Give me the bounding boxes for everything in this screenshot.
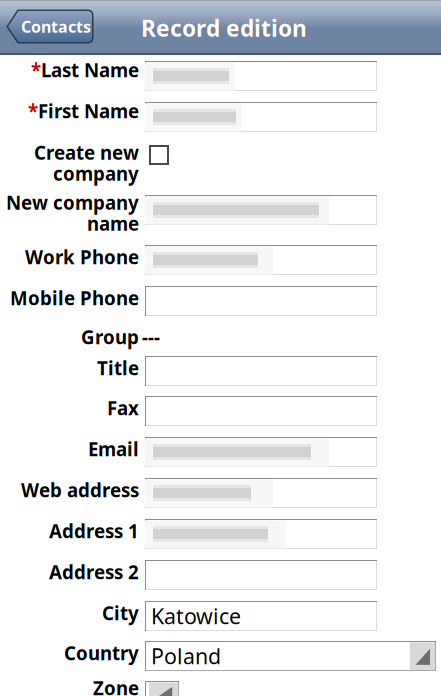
staticText: Web address	[21, 478, 139, 502]
staticText: First Name	[38, 99, 139, 123]
staticText: *	[28, 99, 38, 123]
staticText: Zone	[93, 676, 139, 696]
staticText: name	[87, 211, 139, 236]
button[interactable]: Create new company	[150, 146, 168, 164]
staticText: Address 2	[49, 560, 139, 584]
staticText: Katowice	[151, 602, 241, 630]
staticText: Last Name	[41, 58, 139, 82]
button[interactable]: Poland	[145, 641, 436, 671]
staticText: New company	[6, 190, 139, 215]
staticText: Group	[81, 325, 139, 349]
staticText: *	[31, 58, 41, 82]
staticText: Email	[88, 437, 139, 461]
button[interactable]: Select	[145, 681, 179, 696]
staticText: Work Phone	[25, 245, 139, 269]
staticText: company	[53, 161, 139, 186]
staticText: Create new	[34, 140, 139, 165]
button[interactable]: Contacts	[6, 9, 94, 44]
staticText: Record edition	[141, 13, 307, 43]
staticText: Address 1	[49, 519, 139, 543]
staticText: ---	[142, 325, 160, 349]
staticText: Poland	[151, 642, 221, 670]
staticText: City	[102, 601, 139, 625]
staticText: Mobile Phone	[10, 286, 139, 310]
staticText: Fax	[107, 396, 139, 420]
staticText: Contacts	[21, 16, 91, 37]
staticText: Country	[64, 641, 139, 665]
staticText: Title	[97, 356, 139, 380]
